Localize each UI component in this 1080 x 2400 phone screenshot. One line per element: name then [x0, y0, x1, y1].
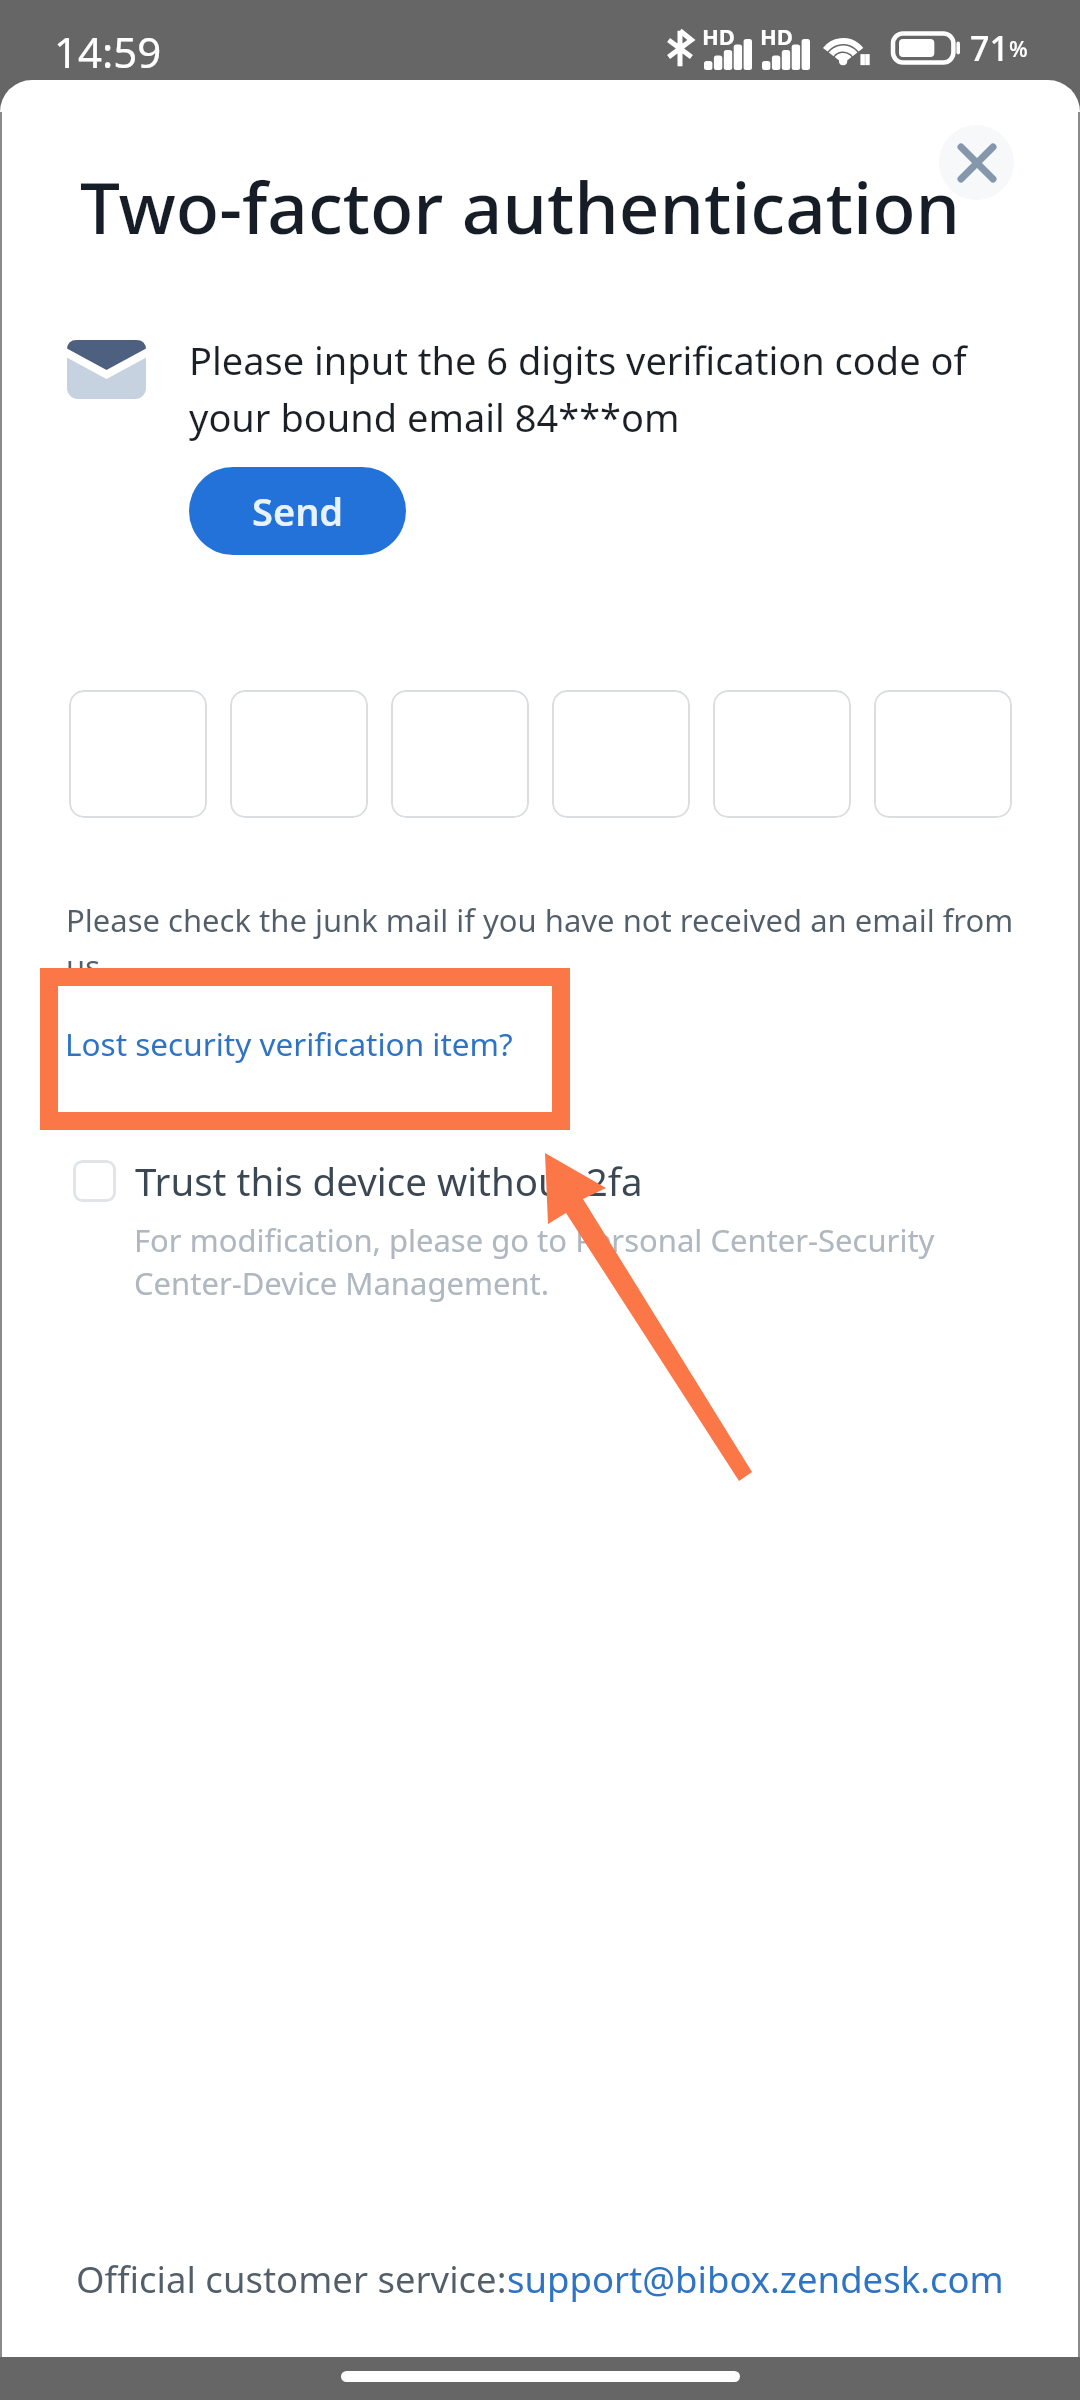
- staticText: Send: [252, 485, 344, 537]
- staticText: HD: [702, 21, 735, 51]
- button[interactable]: [552, 690, 690, 818]
- staticText: Trust this device without 2fa: [135, 1155, 643, 1207]
- button[interactable]: [69, 690, 207, 818]
- staticText: 71: [970, 25, 1009, 71]
- button[interactable]: [874, 690, 1012, 818]
- staticText: Please check the junk mail if you have n…: [66, 899, 1026, 987]
- button[interactable]: Lost security verification item?: [65, 1022, 513, 1065]
- staticText: support@bibox.zendesk.com: [507, 2254, 1004, 2304]
- staticText: Please input the 6 digits verification c…: [189, 334, 1049, 443]
- button[interactable]: [391, 690, 529, 818]
- staticText: %: [1009, 33, 1028, 63]
- button[interactable]: Close: [939, 125, 1014, 200]
- button[interactable]: [230, 690, 368, 818]
- button[interactable]: [713, 690, 851, 818]
- staticText: HD: [760, 21, 793, 51]
- staticText: Official customer service:: [76, 2254, 507, 2304]
- button[interactable]: Send: [189, 467, 406, 555]
- button[interactable]: Trust this device without 2fa: [73, 1155, 643, 1207]
- staticText: For modification, please go to Personal …: [134, 1219, 1034, 1304]
- staticText: Two-factor authentication: [80, 158, 961, 255]
- staticText: 14:59: [54, 23, 162, 80]
- button[interactable]: support@bibox.zendesk.com: [507, 2254, 1004, 2304]
- staticText: Lost security verification item?: [65, 1022, 513, 1065]
